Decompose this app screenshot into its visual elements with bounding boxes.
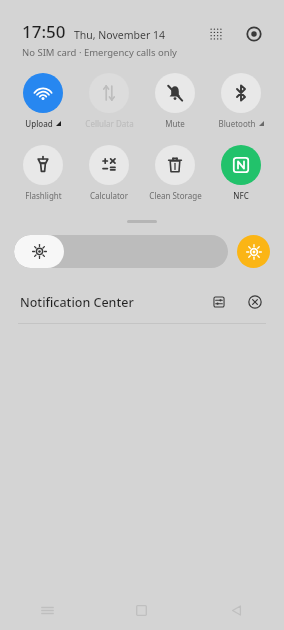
staticText: Calculator <box>90 190 128 201</box>
button[interactable]: Auto brightness <box>237 235 270 268</box>
button[interactable]: Clean Storage <box>142 143 208 203</box>
button[interactable]: Flashlight <box>10 143 76 203</box>
button[interactable]: Mute <box>142 71 208 131</box>
button[interactable]: Bluetooth <box>208 71 274 131</box>
staticText: 17:50 <box>22 20 66 43</box>
button[interactable]: Clear all notifications <box>242 289 268 315</box>
button[interactable]: Upload <box>10 71 76 131</box>
staticText: Notification Center <box>20 294 206 311</box>
button[interactable]: Cellular Data <box>76 71 142 131</box>
staticText: Flashlight <box>25 190 62 201</box>
staticText: Bluetooth <box>218 118 256 129</box>
staticText: Upload <box>25 118 53 129</box>
staticText: Mute <box>165 118 185 129</box>
button[interactable]: Calculator <box>76 143 142 203</box>
staticText: Thu, November 14 <box>74 28 166 42</box>
button[interactable]: Notification settings <box>206 289 232 315</box>
staticText: NFC <box>233 190 249 201</box>
button[interactable]: Brightness <box>14 235 228 268</box>
button[interactable]: Edit quick settings <box>202 20 230 48</box>
staticText: Clean Storage <box>149 190 202 201</box>
button[interactable]: Settings <box>240 20 268 48</box>
staticText: Cellular Data <box>85 118 134 129</box>
button[interactable]: NFC <box>208 143 274 203</box>
staticText: No SIM card · Emergency calls only <box>22 46 177 59</box>
